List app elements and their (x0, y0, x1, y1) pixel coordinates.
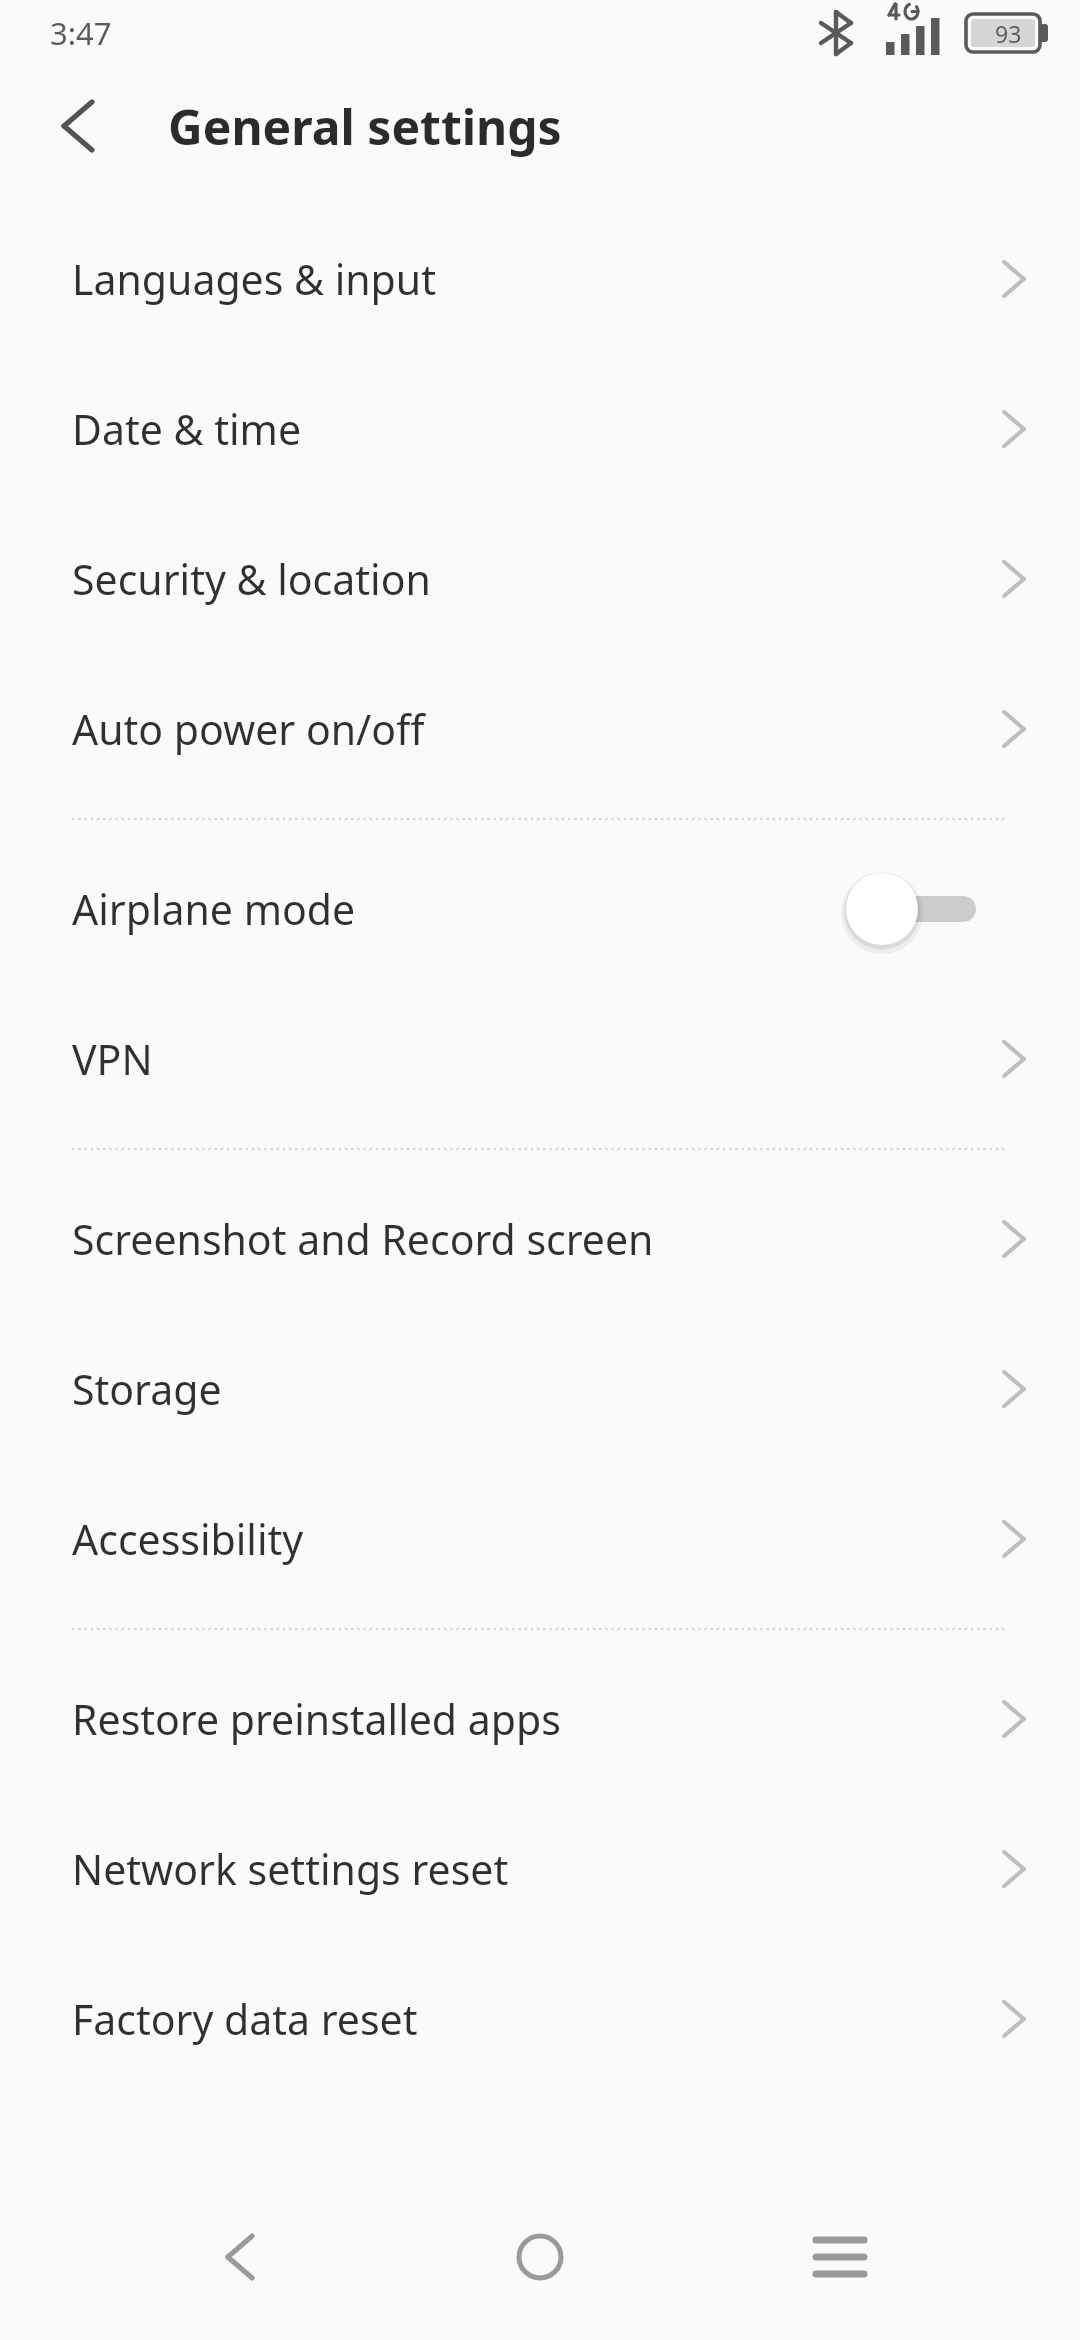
staticText: Restore preinstalled apps (72, 1691, 561, 1747)
button[interactable]: Home (480, 2205, 600, 2325)
staticText: 3:47 (50, 12, 112, 54)
staticText: Security & location (72, 551, 431, 607)
staticText: VPN (72, 1031, 153, 1087)
staticText: Accessibility (72, 1511, 304, 1567)
staticText: General settings (168, 94, 562, 159)
staticText: Factory data reset (72, 1991, 418, 2047)
staticText: Airplane mode (72, 881, 356, 937)
staticText: Date & time (72, 401, 302, 457)
button[interactable]: Factory data reset (0, 1944, 1080, 2094)
staticText: Auto power on/off (72, 701, 425, 757)
button[interactable]: Restore preinstalled apps (0, 1644, 1080, 1794)
button[interactable]: VPN (0, 984, 1080, 1134)
button[interactable]: Storage (0, 1314, 1080, 1464)
button[interactable]: Auto power on/off (0, 654, 1080, 804)
button[interactable]: Recent apps (780, 2205, 900, 2325)
button[interactable]: Languages & input (0, 204, 1080, 354)
button[interactable]: Back (40, 88, 116, 164)
staticText: Languages & input (72, 251, 436, 307)
button[interactable]: Back (180, 2205, 300, 2325)
staticText: Screenshot and Record screen (72, 1211, 654, 1267)
staticText: 93 (995, 18, 1022, 49)
button[interactable]: Screenshot and Record screen (0, 1164, 1080, 1314)
button[interactable]: Accessibility (0, 1464, 1080, 1614)
button[interactable]: Network settings reset (0, 1794, 1080, 1944)
button[interactable]: Security & location (0, 504, 1080, 654)
button[interactable]: Airplane mode (0, 834, 1080, 984)
staticText: Storage (72, 1361, 222, 1417)
staticText: Network settings reset (72, 1841, 509, 1897)
button[interactable]: Date & time (0, 354, 1080, 504)
